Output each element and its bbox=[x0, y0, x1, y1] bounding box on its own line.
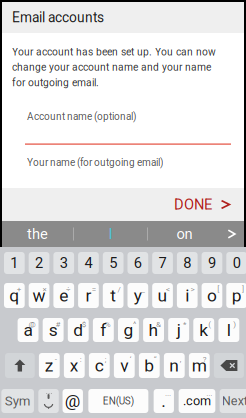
staticText: % bbox=[105, 319, 111, 329]
staticText: ] bbox=[242, 284, 244, 294]
button[interactable]: ··· bbox=[179, 389, 215, 413]
staticText: the bbox=[27, 225, 48, 243]
button[interactable]: 7 bbox=[152, 252, 173, 274]
button[interactable]: - bbox=[39, 353, 60, 378]
staticText: ? bbox=[203, 354, 207, 364]
button[interactable]: DONE bbox=[174, 188, 244, 221]
staticText: Your name (for outgoing email) bbox=[27, 157, 163, 168]
staticText: u bbox=[157, 285, 167, 306]
staticText: f bbox=[100, 320, 106, 340]
staticText: q bbox=[9, 285, 19, 306]
button[interactable]: More suggestions bbox=[221, 221, 244, 247]
staticText: d bbox=[73, 320, 83, 340]
button[interactable]: 3 bbox=[53, 252, 74, 274]
staticText: 4 bbox=[84, 254, 92, 272]
staticText: r bbox=[85, 285, 91, 306]
button[interactable]: , bbox=[164, 353, 185, 378]
staticText: a bbox=[24, 320, 33, 340]
staticText: = bbox=[92, 284, 96, 294]
button[interactable]: on bbox=[148, 221, 221, 247]
button[interactable]: + bbox=[4, 283, 25, 308]
button[interactable]: Shift bbox=[5, 353, 35, 378]
staticText: j bbox=[177, 320, 181, 340]
button[interactable]: ^ bbox=[118, 318, 139, 342]
staticText: i bbox=[185, 285, 189, 306]
button[interactable]: “ bbox=[139, 353, 160, 378]
button[interactable]: ‘ bbox=[114, 353, 135, 378]
staticText: 9 bbox=[208, 254, 216, 272]
staticText: “ bbox=[154, 354, 157, 364]
button[interactable]: Next bbox=[220, 389, 246, 413]
staticText: y bbox=[134, 285, 142, 306]
button[interactable]: 0 bbox=[226, 252, 246, 274]
staticText: + bbox=[17, 284, 22, 294]
button[interactable]: × bbox=[29, 283, 49, 308]
staticText: & bbox=[156, 319, 161, 329]
button[interactable]: ) bbox=[218, 318, 239, 342]
button[interactable]: < bbox=[152, 283, 173, 308]
button[interactable]: _ bbox=[127, 283, 148, 308]
staticText: @ bbox=[65, 391, 81, 411]
staticText: I bbox=[108, 225, 112, 243]
staticText: Account name (optional) bbox=[27, 111, 136, 122]
staticText: on bbox=[176, 225, 192, 243]
staticText: EN(US) bbox=[103, 395, 134, 407]
staticText: 5 bbox=[109, 254, 117, 272]
button[interactable]: Backspace bbox=[214, 353, 244, 378]
button[interactable]: ; bbox=[89, 353, 110, 378]
button[interactable]: ? bbox=[189, 353, 210, 378]
button[interactable]: & bbox=[143, 318, 164, 342]
staticText: e bbox=[59, 285, 68, 306]
staticText: 6 bbox=[134, 254, 142, 272]
staticText: Next bbox=[222, 394, 246, 408]
button[interactable]: ÷ bbox=[53, 283, 74, 308]
staticText: Email accounts bbox=[12, 9, 104, 26]
button[interactable]: % bbox=[93, 318, 114, 342]
staticText: l bbox=[227, 320, 231, 340]
button[interactable]: 8 bbox=[177, 252, 198, 274]
staticText: x bbox=[70, 355, 79, 376]
staticText: × bbox=[42, 284, 46, 294]
staticText: o bbox=[207, 285, 217, 306]
button[interactable]: 9 bbox=[202, 252, 222, 274]
button[interactable]: ··· bbox=[154, 389, 174, 413]
staticText: < bbox=[166, 284, 170, 294]
button[interactable]: ( bbox=[193, 318, 214, 342]
button[interactable]: @ bbox=[18, 318, 38, 342]
staticText: p bbox=[232, 285, 242, 306]
staticText: 0 bbox=[233, 254, 241, 272]
button[interactable]: @ bbox=[62, 389, 83, 413]
button[interactable]: : bbox=[64, 353, 85, 378]
button[interactable]: [ bbox=[202, 283, 222, 308]
button[interactable]: 1 bbox=[4, 252, 25, 274]
button[interactable]: > bbox=[177, 283, 198, 308]
button[interactable]: I bbox=[74, 221, 147, 247]
staticText: s bbox=[49, 320, 58, 340]
staticText: z bbox=[45, 355, 54, 376]
staticText: > bbox=[191, 284, 195, 294]
button[interactable]: ] bbox=[226, 283, 246, 308]
staticText: c bbox=[95, 355, 104, 376]
staticText: b bbox=[144, 355, 154, 376]
staticText: ‘ bbox=[130, 354, 132, 364]
button[interactable]: 5 bbox=[103, 252, 123, 274]
button[interactable]: 6 bbox=[127, 252, 148, 274]
staticText: : bbox=[80, 354, 82, 364]
button[interactable]: = bbox=[78, 283, 99, 308]
staticText: 3 bbox=[60, 254, 68, 272]
staticText: h bbox=[148, 320, 158, 340]
button[interactable]: # bbox=[43, 318, 64, 342]
button[interactable]: * bbox=[168, 318, 189, 342]
staticText: ) bbox=[233, 319, 236, 329]
button[interactable]: Voice input bbox=[38, 389, 59, 413]
button[interactable]: EN(US) bbox=[88, 389, 148, 413]
button[interactable]: Sym bbox=[1, 389, 34, 413]
button[interactable]: / bbox=[103, 283, 123, 308]
button[interactable]: the bbox=[2, 221, 73, 247]
staticText: . bbox=[161, 391, 166, 411]
button[interactable]: 4 bbox=[78, 252, 99, 274]
button[interactable]: $ bbox=[68, 318, 89, 342]
staticText: .com bbox=[183, 394, 211, 408]
staticText: k bbox=[199, 320, 208, 340]
button[interactable]: 2 bbox=[29, 252, 49, 274]
